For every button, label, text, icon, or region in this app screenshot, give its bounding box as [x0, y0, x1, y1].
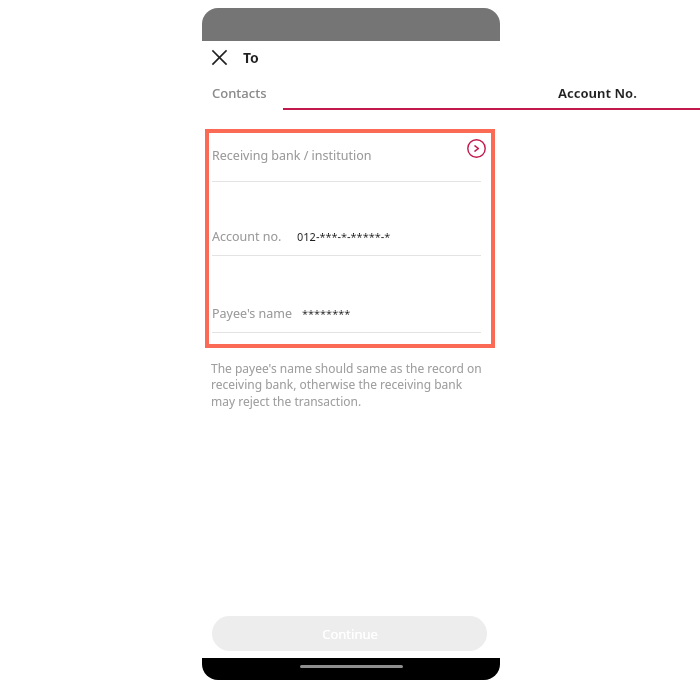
button[interactable]: Continue	[212, 616, 487, 651]
staticText: The payee's name should same as the reco…	[211, 360, 487, 410]
staticText: Contacts	[212, 84, 267, 102]
button[interactable]: Receiving bank / institution	[205, 129, 495, 212]
staticText: 012-***-*-*****-*	[297, 229, 391, 244]
button[interactable]: Payee's name	[205, 296, 495, 340]
button[interactable]: Account No.	[283, 84, 700, 110]
staticText: Receiving bank / institution	[212, 147, 372, 164]
button[interactable]: Close	[205, 43, 233, 71]
staticText: Account No.	[558, 84, 637, 102]
button[interactable]: Contacts	[212, 84, 267, 108]
button[interactable]: Account no.	[205, 212, 495, 296]
staticText: To	[243, 48, 259, 67]
staticText: Continue	[322, 625, 378, 643]
staticText: ********	[302, 306, 351, 321]
staticText: Payee's name	[212, 305, 293, 322]
other: Select receiving bank	[465, 137, 487, 159]
staticText: Account no.	[212, 228, 282, 245]
